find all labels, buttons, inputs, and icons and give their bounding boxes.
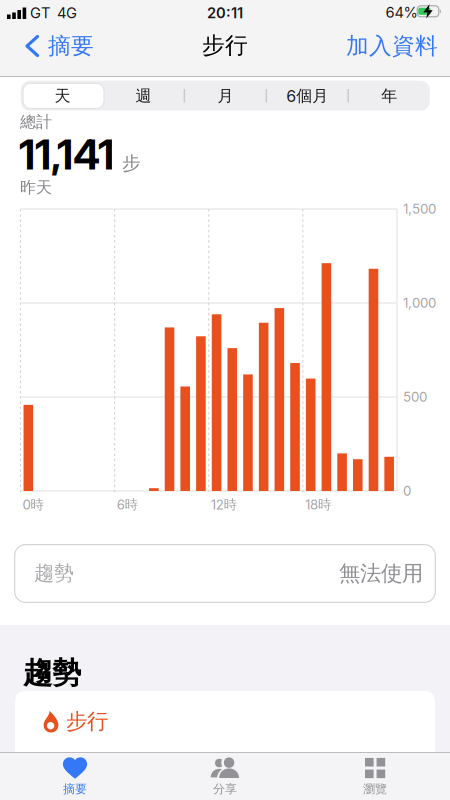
staticText: 分享 — [213, 782, 237, 796]
staticText: 瀏覽 — [363, 782, 387, 796]
staticText: 摘要 — [63, 782, 87, 796]
staticText: 趨勢 — [34, 561, 74, 585]
staticText: 步 — [122, 152, 141, 175]
staticText: 加入資料 — [346, 32, 438, 60]
staticText: 0時 — [22, 496, 43, 513]
button[interactable]: 天 — [22, 82, 102, 109]
staticText: 摘要 — [48, 32, 94, 60]
button[interactable]: 週 — [103, 82, 183, 109]
button[interactable]: 月 — [185, 82, 265, 109]
staticText: 總計 — [20, 112, 52, 132]
staticText: 天 — [54, 86, 70, 106]
staticText: 趨勢 — [23, 655, 81, 691]
staticText: 500 — [403, 389, 427, 405]
staticText: 18時 — [305, 496, 331, 513]
staticText: 步行 — [66, 708, 108, 735]
staticText: 1,000 — [403, 295, 436, 311]
staticText: 無法使用 — [339, 560, 423, 587]
staticText: 6個月 — [286, 86, 328, 106]
button[interactable]: 返回摘要 — [12, 32, 94, 60]
staticText: 4G — [57, 4, 77, 22]
button[interactable]: 年 — [349, 82, 429, 109]
staticText: 0 — [403, 483, 411, 499]
button[interactable]: 6個月 — [267, 82, 347, 109]
staticText: 步行 — [202, 32, 248, 59]
staticText: 1,500 — [403, 201, 436, 217]
staticText: 年 — [381, 86, 397, 106]
button[interactable]: 瀏覽 — [320, 753, 430, 799]
staticText: 11,141 — [19, 130, 114, 179]
staticText: 64% — [385, 4, 417, 21]
button[interactable]: 分享 — [170, 753, 280, 799]
button[interactable]: 加入資料 — [346, 32, 438, 60]
staticText: 昨天 — [20, 177, 52, 197]
button[interactable]: 步行趨勢 — [15, 691, 435, 752]
staticText: GT — [30, 4, 50, 22]
button[interactable]: 摘要 — [20, 753, 130, 799]
staticText: 週 — [135, 86, 151, 106]
staticText: 20:11 — [207, 4, 243, 22]
staticText: 12時 — [211, 496, 237, 513]
staticText: 月 — [217, 86, 233, 106]
staticText: 6時 — [117, 496, 138, 513]
